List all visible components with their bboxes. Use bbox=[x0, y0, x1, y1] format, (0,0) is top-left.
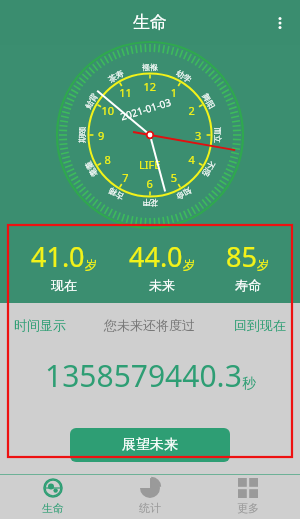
staticText: 寿命 bbox=[235, 277, 261, 293]
staticText: 现在 bbox=[51, 277, 77, 293]
button[interactable]: More options bbox=[260, 0, 300, 45]
staticText: 更多 bbox=[237, 501, 259, 515]
button[interactable]: 展望未来 bbox=[70, 428, 230, 462]
staticText: 未来 bbox=[149, 277, 175, 293]
staticText: 生命 bbox=[42, 501, 64, 515]
button[interactable]: 生命 bbox=[8, 474, 98, 519]
staticText: 44.0 bbox=[129, 238, 183, 275]
button[interactable]: 85 bbox=[226, 238, 269, 293]
button[interactable]: 统计 bbox=[105, 474, 195, 519]
staticText: 您未来还将度过 bbox=[104, 317, 195, 333]
staticText: 秒 bbox=[242, 375, 256, 393]
staticText: 41.0 bbox=[31, 238, 85, 275]
staticText: 展望未来 bbox=[122, 436, 178, 454]
button[interactable]: 41.0 bbox=[31, 238, 97, 293]
staticText: 回到现在 bbox=[234, 317, 286, 333]
staticText: 统计 bbox=[139, 501, 161, 515]
staticText: 岁 bbox=[257, 257, 269, 272]
button[interactable]: 回到现在 bbox=[234, 317, 286, 333]
staticText: 85 bbox=[226, 238, 257, 275]
staticText: 生命 bbox=[133, 12, 167, 33]
button[interactable]: 更多 bbox=[203, 474, 293, 519]
button[interactable]: 时间显示 bbox=[14, 317, 66, 333]
staticText: 岁 bbox=[183, 257, 195, 272]
button[interactable]: 44.0 bbox=[129, 238, 195, 293]
staticText: 时间显示 bbox=[14, 317, 66, 333]
staticText: 岁 bbox=[85, 257, 97, 272]
staticText: 1358579440.3 bbox=[45, 355, 242, 396]
